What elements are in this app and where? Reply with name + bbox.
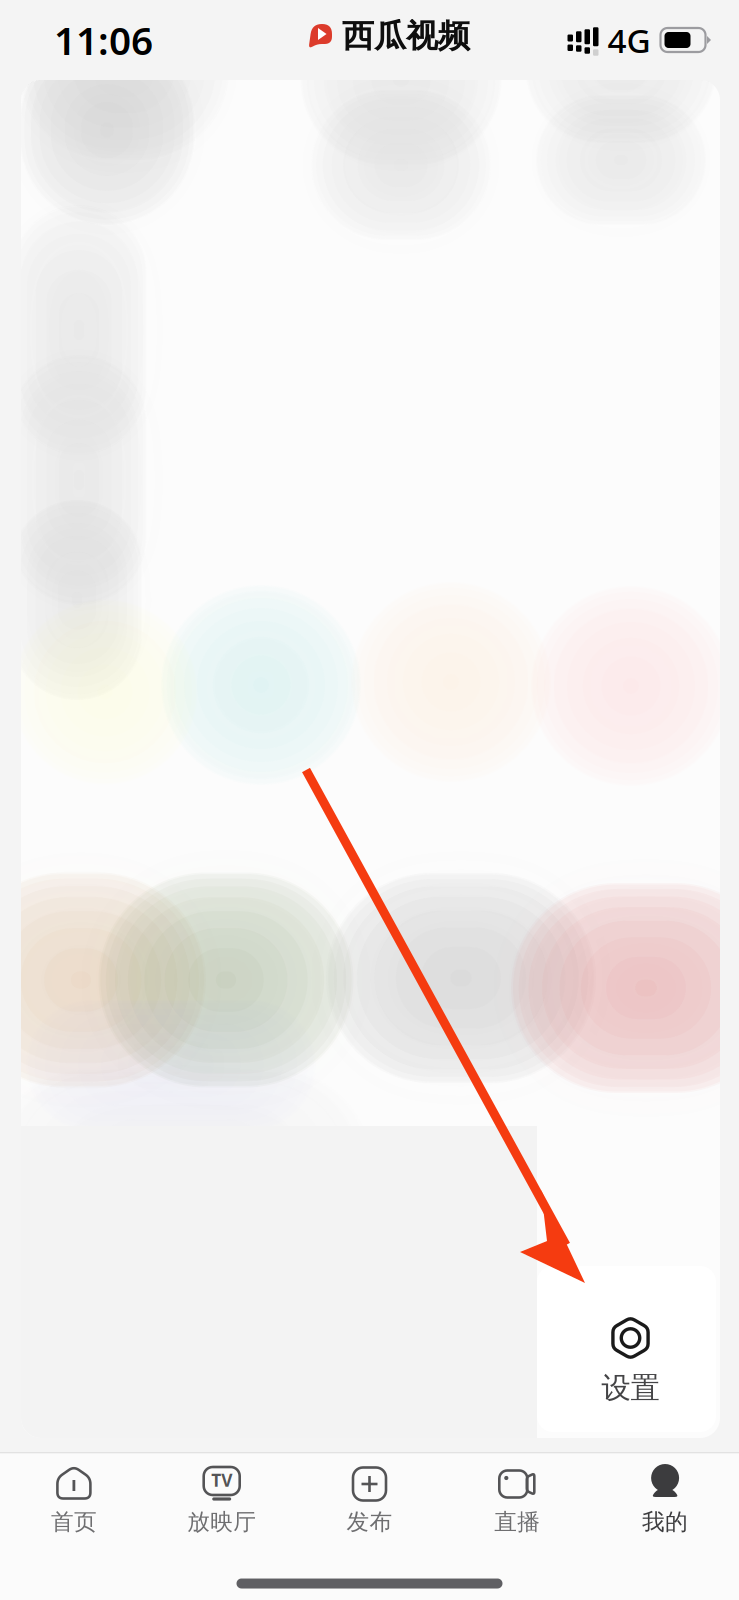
button[interactable]: 我的 xyxy=(591,1452,739,1547)
staticText: 首页 xyxy=(51,1508,97,1536)
staticText: 4G xyxy=(607,18,650,62)
staticText: TV xyxy=(211,1468,232,1491)
button[interactable]: 设置 xyxy=(537,1266,716,1432)
staticText: 西瓜视频 xyxy=(342,16,470,56)
button[interactable]: 首页 xyxy=(0,1452,148,1547)
staticText: 我的 xyxy=(642,1508,688,1536)
staticText: 设置 xyxy=(601,1370,659,1406)
button[interactable]: 直播 xyxy=(443,1452,591,1547)
staticText: 11:06 xyxy=(54,14,153,66)
button[interactable]: TV xyxy=(148,1452,296,1547)
staticText: 放映厅 xyxy=(187,1508,256,1536)
button[interactable]: 发布 xyxy=(296,1452,443,1547)
staticText: 直播 xyxy=(494,1508,540,1536)
staticText: 发布 xyxy=(346,1508,392,1536)
